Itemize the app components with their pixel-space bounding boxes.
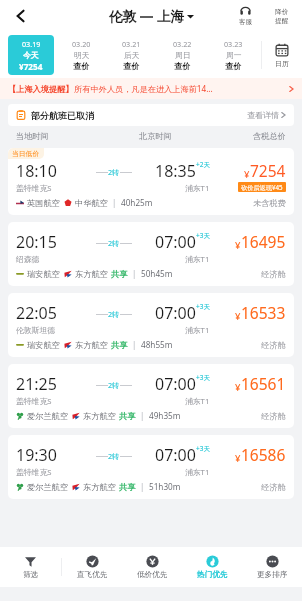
button[interactable]: 筛选 [0,555,61,580]
staticText: ¥ [235,381,241,394]
staticText: 2转 [108,238,120,248]
staticText: 22:05 [16,302,57,324]
button[interactable]: 客服 [228,6,262,26]
staticText: 盖特维克S [16,396,52,407]
staticText: 周日 [175,50,191,60]
staticText: 2转 [108,451,120,461]
staticText: 含税总价 [253,131,286,141]
staticText: 盖特维克S [16,183,52,194]
staticText: +3天 [196,373,210,382]
button[interactable]: 19:30 [8,435,294,499]
staticText: 19:30 [16,444,57,466]
staticText: 浦东T1 [185,325,210,336]
staticText: | [140,410,145,421]
button[interactable]: 部分航班已取消 [8,104,294,126]
staticText: 共享 [119,411,136,421]
staticText: 浦东T1 [185,254,210,265]
staticText: 经济舱 [261,482,286,492]
staticText: | [112,197,117,208]
staticText: 热门优先 [197,570,228,580]
staticText: 18:35 [155,160,196,182]
button[interactable]: 21:25 [8,364,294,428]
button[interactable]: 20:15 [8,222,294,286]
staticText: 48h55m [141,339,173,350]
staticText: 查价 [73,61,90,71]
staticText: 提醒 [275,16,289,25]
staticText: 18:10 [16,160,57,182]
button[interactable]: 直飞优先 [62,555,122,580]
staticText: 21:25 [16,373,57,395]
staticText: 绍森德 [16,254,40,264]
staticText: 16495 [241,231,286,252]
button[interactable]: 当日低价 [8,148,294,215]
staticText: 砍价后返现¥45 [241,183,283,191]
staticText: 伦敦 [109,8,136,25]
staticText: 经济舱 [261,340,286,350]
staticText: 筛选 [23,570,39,580]
staticText: ¥ [235,310,241,323]
staticText: 当日低价 [12,149,40,158]
staticText: ¥ [235,452,241,465]
staticText: 周一 [226,50,242,60]
staticText: 2转 [108,309,120,319]
button[interactable]: 日历 [262,43,302,68]
staticText: 20:15 [16,231,57,253]
staticText: 查价 [174,61,191,71]
staticText: +3天 [196,444,210,453]
staticText: 部分航班已取消 [31,110,94,121]
staticText: 明天 [74,50,90,60]
staticText: +2天 [196,160,210,169]
staticText: 中华航空 [75,198,108,208]
staticText: 共享 [111,269,128,279]
staticText: 03.23 [224,39,243,49]
staticText: 03.20 [72,39,91,49]
button[interactable]: 03.22 [159,35,206,75]
button[interactable]: 伦敦 [109,8,194,25]
staticText: 50h45m [141,268,173,279]
staticText: 03.19 [22,39,41,49]
staticText: 北京时间 [139,131,172,141]
staticText: 49h35m [149,410,181,421]
button[interactable]: 22:05 [8,293,294,357]
staticText: 瑞安航空 [27,340,60,350]
button[interactable]: 【上海入境提醒】 [8,78,294,99]
button[interactable]: 03.23 [210,35,257,75]
staticText: | [132,339,137,350]
button[interactable]: 低价优先 [122,555,182,580]
staticText: 更多排序 [257,570,288,580]
button[interactable]: 更多排序 [242,555,302,580]
button[interactable]: 03.21 [108,35,155,75]
staticText: 经济舱 [261,269,286,279]
staticText: 07:00 [155,373,196,395]
staticText: 未含税费 [253,198,286,208]
staticText: 40h25m [121,197,153,208]
staticText: 共享 [119,482,136,492]
staticText: 2转 [108,380,120,390]
staticText: 07:00 [155,231,196,253]
staticText: 查看详情 [247,110,279,120]
staticText: 51h30m [149,481,181,492]
button[interactable]: Back [8,3,34,29]
staticText: 查价 [123,61,140,71]
staticText: ¥ [244,168,250,181]
staticText: +3天 [196,231,210,240]
staticText: 爱尔兰航空 [27,411,68,421]
button[interactable]: 热门优先 [182,555,242,580]
button[interactable]: 03.19 [8,35,54,75]
staticText: 东方航空 [83,482,116,492]
staticText: 03.21 [122,39,141,49]
staticText: 07:00 [155,444,196,466]
button[interactable]: 降价 [268,7,296,25]
staticText: +3天 [196,302,210,311]
button[interactable]: 03.20 [58,35,104,75]
staticText: 16533 [241,302,286,323]
staticText: 盖特维克S [16,467,52,478]
staticText: 降价 [275,7,289,16]
staticText: 07:00 [155,302,196,324]
staticText: ¥ [235,239,241,252]
staticText: 今天 [23,50,39,60]
staticText: 东方航空 [75,340,108,350]
staticText: 当地时间 [16,131,49,141]
staticText: 上海 [157,8,184,25]
staticText: 爱尔兰航空 [27,482,68,492]
